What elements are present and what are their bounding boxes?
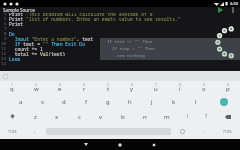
staticText: total += Val(text) xyxy=(9,51,66,56)
staticText: If text = "" Then Exit Do xyxy=(9,41,85,46)
button[interactable]: s xyxy=(31,95,53,109)
button[interactable]: l xyxy=(185,95,207,109)
staticText: s xyxy=(41,98,44,106)
staticText: ?123 xyxy=(8,129,17,134)
button[interactable]: 0 xyxy=(216,81,240,95)
staticText: Print xyxy=(9,21,24,26)
staticText: rem nothing xyxy=(107,53,145,59)
staticText: q xyxy=(10,85,14,93)
button[interactable]: z xyxy=(25,109,46,124)
staticText: z xyxy=(34,113,37,121)
staticText: 2 xyxy=(35,83,37,87)
button[interactable]: Shift xyxy=(0,109,25,124)
staticText: 13 xyxy=(1,56,7,61)
button[interactable]: Recents xyxy=(137,139,171,150)
staticText: m xyxy=(164,113,170,121)
staticText: y xyxy=(130,85,134,93)
button[interactable]: f xyxy=(75,95,97,109)
staticText: 3 xyxy=(59,83,61,87)
button[interactable]: j xyxy=(141,95,163,109)
button[interactable]: a xyxy=(10,95,31,109)
staticText: 4 xyxy=(83,83,85,87)
staticText: 0 xyxy=(227,83,229,87)
staticText: 9 xyxy=(4,36,7,41)
button[interactable]: Enter xyxy=(207,95,240,109)
staticText: g xyxy=(106,98,110,106)
staticText: If text <> "" Then xyxy=(107,39,153,45)
staticText: 8 xyxy=(179,83,181,87)
staticText: f xyxy=(85,98,88,106)
staticText: If stop = "" Then xyxy=(107,46,155,52)
staticText: 6 xyxy=(4,21,7,26)
staticText: Loop xyxy=(9,56,21,61)
staticText: h xyxy=(128,98,132,106)
staticText: 7 xyxy=(155,83,157,87)
staticText: Print "list of numbers. Enter an empty v… xyxy=(9,16,181,21)
button[interactable]: 2 xyxy=(24,81,48,95)
button[interactable]: 3 xyxy=(48,81,72,95)
staticText: w xyxy=(34,85,39,93)
staticText: 11 xyxy=(1,46,7,51)
button[interactable]: b xyxy=(112,109,134,124)
staticText: Input "Enter a number", text xyxy=(9,36,94,41)
other: Radial action menu xyxy=(0,0,240,150)
button[interactable]: 9 xyxy=(192,81,216,95)
button[interactable]: Backspace xyxy=(216,109,240,124)
staticText: ! xyxy=(187,113,189,120)
button[interactable]: x xyxy=(46,109,68,124)
staticText: k xyxy=(172,98,176,106)
staticText: 12 xyxy=(1,51,7,56)
staticText: e xyxy=(58,85,62,93)
staticText: t xyxy=(107,85,110,93)
staticText: n xyxy=(143,113,147,121)
staticText: b xyxy=(121,113,125,121)
staticText: a xyxy=(19,98,23,106)
staticText: 5 xyxy=(107,83,109,87)
button[interactable]: 4 xyxy=(72,81,96,95)
button[interactable]: c xyxy=(68,109,90,124)
staticText: 8 xyxy=(4,31,7,36)
staticText: 5 xyxy=(4,16,7,21)
staticText: 1 xyxy=(11,83,13,87)
staticText: . xyxy=(203,128,205,135)
staticText: j xyxy=(151,98,153,106)
button[interactable]: ?123 xyxy=(0,124,24,139)
staticText: 9 xyxy=(203,83,205,87)
staticText: ? xyxy=(205,113,208,120)
button[interactable]: h xyxy=(119,95,141,109)
button[interactable]: m xyxy=(156,109,178,124)
button[interactable]: ? xyxy=(197,109,216,124)
button[interactable]: v xyxy=(90,109,112,124)
button[interactable]: Home xyxy=(103,139,137,150)
staticText: 4:30 xyxy=(230,1,238,6)
button[interactable]: k xyxy=(163,95,185,109)
staticText: i xyxy=(179,85,181,93)
button[interactable]: , xyxy=(24,124,46,139)
staticText: 6 xyxy=(131,83,133,87)
staticText: o xyxy=(202,85,206,93)
button[interactable]: 6 xyxy=(120,81,144,95)
button[interactable]: Back xyxy=(69,139,103,150)
button[interactable]: d xyxy=(53,95,75,109)
staticText: Print "This program will calculate the a… xyxy=(9,13,156,16)
button[interactable]: g xyxy=(97,95,119,109)
staticText: ?123 xyxy=(223,129,232,134)
staticText: p xyxy=(226,85,230,93)
staticText: Do xyxy=(9,31,15,36)
button[interactable]: ! xyxy=(178,109,197,124)
button[interactable]: 8 xyxy=(168,81,192,95)
button[interactable]: 1 xyxy=(0,81,24,95)
staticText: x xyxy=(55,113,59,121)
button[interactable]: ?123 xyxy=(215,124,240,139)
button[interactable]: 5 xyxy=(96,81,120,95)
button[interactable]: n xyxy=(134,109,156,124)
staticText: l xyxy=(195,98,197,106)
button[interactable]: More options xyxy=(227,7,239,13)
staticText: 10 xyxy=(1,41,7,46)
button[interactable]: Run xyxy=(213,7,227,13)
button[interactable]: 7 xyxy=(144,81,168,95)
button[interactable]: Emoji xyxy=(171,124,193,139)
staticText: 7 xyxy=(4,26,7,31)
